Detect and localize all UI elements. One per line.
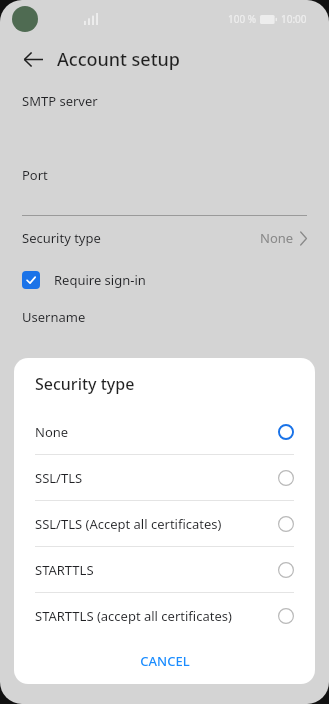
button[interactable]: Require sign-in bbox=[0, 260, 329, 300]
button[interactable]: SSL/TLS bbox=[14, 455, 315, 500]
staticText: Port bbox=[22, 166, 48, 184]
staticText: SSL/TLS (Accept all certificates) bbox=[35, 515, 272, 533]
staticText: STARTTLS bbox=[35, 561, 272, 579]
staticText: Username bbox=[22, 308, 86, 326]
staticText: None bbox=[260, 229, 294, 247]
staticText: CANCEL bbox=[140, 652, 190, 670]
staticText: 10:00 bbox=[281, 12, 307, 26]
button[interactable]: None bbox=[14, 409, 315, 454]
staticText: SMTP server bbox=[22, 92, 98, 110]
staticText: Security type bbox=[22, 229, 101, 247]
button[interactable]: Back bbox=[14, 40, 52, 78]
staticText: STARTTLS (accept all certificates) bbox=[35, 607, 272, 625]
staticText: Security type bbox=[35, 373, 135, 395]
button[interactable]: STARTTLS bbox=[14, 547, 315, 592]
staticText: Account setup bbox=[57, 47, 181, 72]
staticText: Require sign-in bbox=[54, 271, 146, 289]
button[interactable]: Security type bbox=[0, 216, 329, 260]
staticText: None bbox=[35, 423, 272, 441]
button[interactable]: CANCEL bbox=[14, 638, 315, 684]
staticText: 100 % bbox=[228, 12, 257, 26]
button[interactable]: SSL/TLS (Accept all certificates) bbox=[14, 501, 315, 546]
staticText: SSL/TLS bbox=[35, 469, 272, 487]
button[interactable]: STARTTLS (accept all certificates) bbox=[14, 593, 315, 638]
